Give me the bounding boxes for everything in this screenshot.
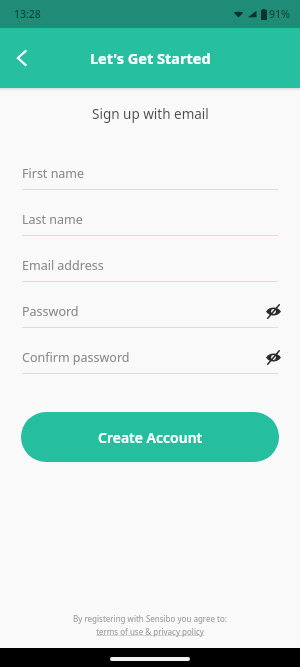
button[interactable]: Password: [0, 291, 300, 337]
staticText: Password: [22, 303, 79, 320]
button[interactable]: Home: [110, 657, 190, 661]
button[interactable]: Back: [0, 36, 44, 80]
button[interactable]: Confirm password: [0, 337, 300, 383]
staticText: Create Account: [98, 428, 203, 447]
staticText: terms of use & privacy policy: [96, 626, 204, 637]
button[interactable]: First name: [0, 153, 300, 199]
button[interactable]: Email address: [0, 245, 300, 291]
staticText: First name: [22, 165, 85, 182]
staticText: Let's Get Started: [90, 48, 211, 68]
staticText: Sign up with email: [92, 105, 209, 123]
staticText: Last name: [22, 211, 83, 228]
button[interactable]: Last name: [0, 199, 300, 245]
button[interactable]: Create Account: [21, 412, 279, 462]
staticText: By registering with Sensibo you agree to…: [73, 613, 227, 624]
staticText: Email address: [22, 257, 104, 274]
button[interactable]: Show password: [262, 300, 284, 322]
staticText: 13:28: [14, 7, 41, 21]
button[interactable]: Show password: [262, 346, 284, 368]
staticText: Confirm password: [22, 349, 130, 366]
staticText: 91%: [269, 7, 290, 21]
button[interactable]: terms of use & privacy policy: [96, 626, 204, 637]
